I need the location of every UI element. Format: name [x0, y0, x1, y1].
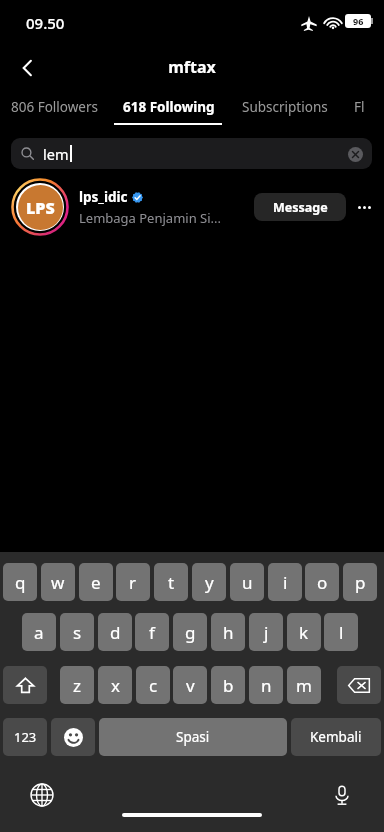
button[interactable]: y	[192, 563, 226, 601]
staticText: v	[186, 674, 195, 697]
button[interactable]: Subscriptions	[242, 88, 328, 126]
button[interactable]: o	[305, 563, 339, 601]
button[interactable]: Message	[254, 193, 346, 221]
staticText: Flagge	[354, 98, 371, 116]
button[interactable]: l	[324, 613, 358, 651]
staticText: n	[261, 674, 272, 697]
staticText: Lembaga Penjamin Si...	[79, 209, 221, 227]
staticText: z	[73, 674, 81, 697]
button[interactable]: More options	[346, 189, 382, 225]
button[interactable]: n	[249, 666, 283, 704]
button[interactable]: v	[173, 666, 207, 704]
staticText: r	[129, 571, 137, 594]
button[interactable]: 806 Followers	[11, 88, 98, 126]
staticText: t	[168, 571, 175, 594]
button[interactable]: Backspace	[337, 666, 381, 704]
staticText: Kembali	[310, 728, 362, 746]
button[interactable]: Emoji	[51, 718, 95, 756]
staticText: mftax	[0, 56, 384, 78]
button[interactable]: d	[98, 613, 132, 651]
button[interactable]: h	[211, 613, 245, 651]
staticText: lem	[43, 144, 69, 164]
button[interactable]: m	[287, 666, 321, 704]
staticText: Spasi	[176, 728, 210, 746]
button[interactable]: Clear	[347, 146, 363, 162]
button[interactable]: q	[3, 563, 37, 601]
staticText: m	[296, 674, 312, 697]
button[interactable]: w	[41, 563, 75, 601]
button[interactable]: i	[268, 563, 302, 601]
staticText: s	[73, 621, 82, 644]
button[interactable]: x	[98, 666, 132, 704]
staticText: o	[317, 571, 328, 594]
staticText: 96	[353, 15, 364, 27]
staticText: g	[185, 621, 196, 644]
staticText: u	[242, 571, 253, 594]
staticText: Message	[273, 199, 328, 216]
staticText: j	[264, 621, 269, 644]
button[interactable]: p	[343, 563, 377, 601]
button[interactable]: f	[135, 613, 169, 651]
button[interactable]: 618 Following	[123, 88, 215, 126]
staticText: 618 Following	[123, 98, 215, 116]
staticText: lps_idic	[79, 188, 128, 206]
button[interactable]: Flagge	[354, 88, 371, 126]
staticText: l	[339, 621, 344, 644]
button[interactable]: c	[136, 666, 170, 704]
button[interactable]: e	[79, 563, 113, 601]
button[interactable]: Back	[8, 48, 48, 88]
staticText: LPS	[26, 197, 55, 219]
button[interactable]: r	[116, 563, 150, 601]
button[interactable]: k	[287, 613, 321, 651]
staticText: a	[34, 621, 44, 644]
button[interactable]: g	[173, 613, 207, 651]
button[interactable]: u	[230, 563, 264, 601]
staticText: e	[91, 571, 101, 594]
staticText: h	[223, 621, 234, 644]
staticText: p	[355, 571, 366, 594]
button[interactable]: Kembali	[291, 718, 381, 756]
staticText: x	[111, 674, 120, 697]
button[interactable]: 123	[3, 718, 47, 756]
button[interactable]: Change keyboard language	[22, 775, 62, 815]
staticText: w	[51, 571, 65, 594]
button[interactable]: s	[60, 613, 94, 651]
staticText: 123	[14, 728, 37, 746]
button[interactable]: z	[60, 666, 94, 704]
staticText: f	[149, 621, 155, 644]
staticText: d	[110, 621, 121, 644]
staticText: k	[299, 621, 309, 644]
button[interactable]: Shift	[3, 666, 47, 704]
button[interactable]: a	[22, 613, 56, 651]
button[interactable]: t	[154, 563, 188, 601]
staticText: 806 Followers	[11, 98, 98, 116]
staticText: 09.50	[26, 13, 65, 33]
staticText: i	[283, 571, 288, 594]
staticText: c	[149, 674, 158, 697]
button[interactable]: j	[249, 613, 283, 651]
button[interactable]: b	[211, 666, 245, 704]
button[interactable]: LPS	[0, 176, 384, 238]
staticText: b	[223, 674, 234, 697]
button[interactable]: lem	[11, 138, 372, 169]
staticText: Subscriptions	[242, 98, 328, 116]
button[interactable]: Spasi	[99, 718, 287, 756]
button[interactable]: Voice input	[322, 775, 362, 815]
staticText: y	[205, 571, 214, 594]
staticText: q	[15, 571, 26, 594]
